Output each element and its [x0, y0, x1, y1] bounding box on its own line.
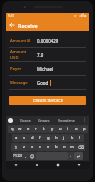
staticText: p [83, 126, 86, 132]
button[interactable]: Voice input [8, 118, 13, 123]
button[interactable]: n [60, 143, 68, 151]
staticText: 9:41 [8, 14, 15, 18]
button[interactable]: ⇧ [11, 143, 20, 151]
staticText: , [25, 153, 27, 159]
staticText: 0.0000429 [37, 38, 59, 44]
staticText: i [67, 126, 69, 132]
button[interactable]: z [20, 143, 28, 151]
staticText: ⋮ [83, 118, 87, 122]
staticText: m [70, 144, 74, 150]
button[interactable]: v [44, 143, 52, 151]
staticText: o [75, 126, 78, 132]
button[interactable]: Gnaws [38, 118, 50, 123]
button[interactable]: e [24, 125, 32, 133]
staticText: Snowtime [58, 118, 75, 123]
staticText: r [35, 126, 37, 132]
staticText: c [39, 144, 42, 150]
button[interactable]: Goose [20, 118, 31, 123]
button[interactable]: i [64, 125, 72, 133]
button[interactable]: c [36, 143, 44, 151]
button[interactable]: p [80, 125, 88, 133]
staticText: ⌫ [78, 145, 84, 150]
staticText: ☺ [30, 154, 35, 159]
button[interactable]: u [56, 125, 64, 133]
staticText: z [23, 144, 25, 150]
staticText: Message [10, 80, 28, 86]
button[interactable]: m [68, 143, 76, 151]
staticText: k [71, 135, 74, 141]
staticText: f [39, 135, 41, 141]
button[interactable]: . [68, 152, 74, 160]
button[interactable]: Amount Ƀ [6, 34, 89, 48]
staticText: n [63, 144, 66, 150]
staticText: Good [37, 80, 49, 86]
button[interactable]: Snowtime [58, 118, 75, 123]
staticText: l [79, 135, 81, 141]
staticText: j [63, 135, 65, 141]
staticText: Michael [37, 66, 54, 72]
staticText: s [23, 135, 26, 141]
button[interactable]: Home [26, 161, 47, 169]
staticText: Gnaws [38, 118, 50, 123]
button[interactable]: Amount USD [6, 48, 89, 62]
button[interactable]: q [8, 125, 16, 133]
button[interactable]: Enter [74, 152, 83, 160]
staticText: y [51, 126, 54, 132]
staticText: x [31, 144, 34, 150]
button[interactable]: CREATE INVOICE [9, 96, 86, 105]
button[interactable]: s [20, 134, 28, 142]
button[interactable]: d [28, 134, 36, 142]
staticText: . [70, 153, 72, 159]
button[interactable]: y [48, 125, 56, 133]
staticText: Payer [10, 66, 22, 72]
staticText: h [55, 135, 58, 141]
button[interactable]: Recents [47, 161, 68, 169]
staticText: t [43, 126, 45, 132]
button[interactable]: o [72, 125, 80, 133]
staticText: u [59, 126, 62, 132]
button[interactable]: g [44, 134, 52, 142]
button[interactable]: k [68, 134, 76, 142]
button[interactable]: f [36, 134, 44, 142]
staticText: Goose [20, 118, 31, 123]
button[interactable]: ?123 [13, 152, 23, 160]
staticText: Receive [18, 22, 38, 29]
button[interactable]: r [32, 125, 40, 133]
staticText: 7.0 [37, 52, 44, 58]
staticText: Amount USD [10, 49, 34, 61]
button[interactable]: h [52, 134, 60, 142]
staticText: a [15, 135, 18, 141]
button[interactable]: Back [6, 19, 18, 31]
button[interactable]: Back [6, 161, 26, 169]
staticText: CREATE INVOICE [33, 98, 63, 103]
button[interactable]: w [16, 125, 24, 133]
staticText: Amount Ƀ [10, 38, 30, 44]
button[interactable]: Dismiss [68, 161, 89, 169]
staticText: ?123 [13, 153, 23, 159]
staticText: ↵ [77, 154, 81, 159]
staticText: w [18, 126, 22, 132]
staticText: b [55, 144, 58, 150]
button[interactable]: a [12, 134, 20, 142]
staticText: ⇧ [14, 145, 18, 150]
staticText: q [11, 126, 14, 132]
button[interactable]: j [60, 134, 68, 142]
staticText: g [47, 135, 50, 141]
button[interactable]: l [76, 134, 84, 142]
button[interactable]: Message [6, 76, 89, 90]
button[interactable]: ⌫ [76, 143, 85, 151]
button[interactable]: x [28, 143, 36, 151]
staticText: e [27, 126, 30, 132]
button[interactable]: Payer [6, 62, 89, 76]
button[interactable]: ☺ [29, 152, 36, 160]
staticText: v [47, 144, 50, 150]
button[interactable]: , [23, 152, 29, 160]
button[interactable]: t [40, 125, 48, 133]
button[interactable]: b [52, 143, 60, 151]
staticText: d [31, 135, 34, 141]
